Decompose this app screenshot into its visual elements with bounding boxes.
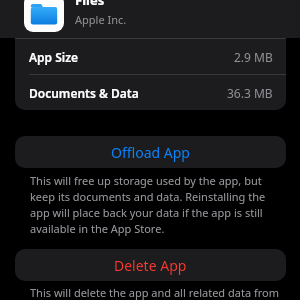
- staticText: App Size: [29, 49, 79, 65]
- staticText: Delete App: [114, 256, 187, 275]
- staticText: 2.9 MB: [234, 49, 273, 65]
- staticText: Documents & Data: [29, 85, 139, 101]
- button[interactable]: Delete App: [15, 249, 286, 281]
- staticText: This will free up storage used by the ap…: [30, 173, 278, 236]
- staticText: This will delete the app and all related…: [30, 285, 282, 300]
- button[interactable]: Files: [0, 0, 300, 38]
- staticText: Offload App: [111, 143, 190, 162]
- staticText: Apple Inc.: [75, 12, 127, 27]
- staticText: 36.3 MB: [227, 85, 273, 101]
- staticText: Files: [75, 0, 105, 9]
- button[interactable]: Offload App: [15, 136, 286, 168]
- button[interactable]: Documents & Data: [15, 75, 286, 110]
- button[interactable]: App Size: [15, 39, 286, 74]
